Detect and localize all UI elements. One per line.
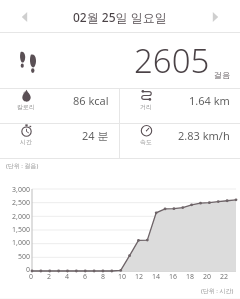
staticText: (단위 : 걸음) [6,162,39,170]
staticText: 500 [17,252,30,262]
staticText: 86 kcal [73,93,109,108]
staticText: 22 [220,272,229,282]
staticText: 4 [65,272,70,282]
staticText: 2,500 [12,198,30,208]
staticText: 20 [203,272,212,282]
button[interactable]: Next day [198,0,232,33]
staticText: 18 [186,272,195,282]
staticText: 1,500 [12,225,30,235]
staticText: 걸음 [214,70,230,80]
staticText: 1.64 km [189,93,230,108]
staticText: 24 분 [82,128,109,143]
staticText: 거리 [140,103,152,111]
staticText: 1,000 [12,238,30,248]
staticText: 2.83 km/h [178,128,230,143]
staticText: 2605 [134,38,210,83]
button[interactable]: Hourly step chart [0,159,240,298]
staticText: 2 [47,272,52,282]
staticText: 칼로리 [17,103,35,111]
staticText: 02월 25일 일요일 [73,9,167,25]
staticText: 속도 [140,138,152,146]
staticText: 12 [135,272,144,282]
staticText: (단위 : 시간) [201,287,234,295]
staticText: 시간 [20,138,32,146]
staticText: 2,000 [12,212,30,222]
staticText: 0 [29,272,34,282]
button[interactable]: 칼로리 [0,89,119,111]
button[interactable]: 2605 [0,33,240,88]
button[interactable]: 거리 [120,89,240,111]
button[interactable]: 속도 [120,124,240,146]
button[interactable]: Previous day [8,0,42,33]
staticText: 10 [118,272,127,282]
staticText: 14 [152,272,161,282]
staticText: 6 [83,272,88,282]
staticText: 0 [25,265,30,275]
staticText: 16 [169,272,178,282]
staticText: 8 [101,272,106,282]
staticText: 3,000 [12,185,30,195]
button[interactable]: 시간 [0,124,119,146]
